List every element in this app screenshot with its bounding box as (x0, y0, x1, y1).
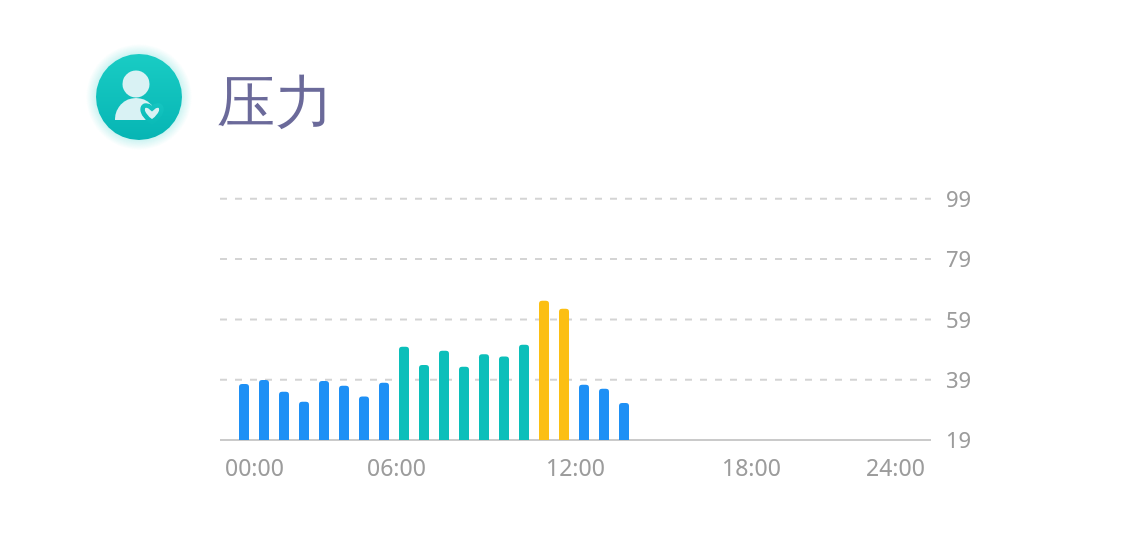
staticText: 00:00 (225, 451, 284, 482)
staticText: 59 (946, 304, 972, 334)
staticText: 12:00 (546, 451, 605, 482)
button[interactable]: Stress icon (96, 54, 182, 140)
staticText: 24:00 (866, 451, 925, 482)
staticText: 39 (946, 364, 972, 394)
staticText: 19 (946, 424, 972, 454)
staticText: 99 (946, 183, 972, 213)
button[interactable]: 压力 (217, 66, 333, 139)
staticText: 06:00 (367, 451, 426, 482)
staticText: 压力 (217, 66, 333, 139)
staticText: 18:00 (722, 451, 781, 482)
staticText: 79 (946, 243, 972, 273)
